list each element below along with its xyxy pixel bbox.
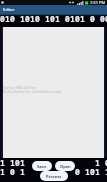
staticText: 1 xyxy=(70,13,75,24)
staticText: 1 xyxy=(95,157,100,168)
staticText: 0 xyxy=(105,13,107,24)
staticText: 1 xyxy=(85,166,90,177)
staticText: 0 xyxy=(65,13,70,24)
staticText: 1 xyxy=(55,13,60,24)
staticText: 1 xyxy=(105,166,107,177)
staticText: 0 xyxy=(75,13,80,24)
staticText: 0 xyxy=(0,13,5,24)
staticText: 1 xyxy=(20,166,25,177)
staticText: Type Your HTML Code Here xyxy=(3,86,37,90)
staticText: Open xyxy=(60,164,71,169)
staticText: 1 xyxy=(0,157,5,168)
staticText: 0 xyxy=(10,13,15,24)
staticText: 1 xyxy=(45,13,50,24)
staticText: 0 xyxy=(105,157,107,168)
staticText: 1 xyxy=(30,13,35,24)
staticText: Editor xyxy=(3,7,15,12)
staticText: 1 xyxy=(0,166,5,177)
staticText: 0 xyxy=(50,13,55,24)
staticText: 1 xyxy=(95,166,100,177)
staticText: 1 xyxy=(10,157,15,168)
staticText: 0 xyxy=(100,13,105,24)
button[interactable]: Save xyxy=(32,161,52,171)
staticText: 1 xyxy=(20,157,25,168)
button[interactable]: Open xyxy=(55,161,75,171)
button[interactable]: Process xyxy=(40,171,68,181)
staticText: 0 xyxy=(75,166,80,177)
staticText: 0 xyxy=(90,13,95,24)
staticText: Process xyxy=(46,174,62,179)
staticText: 0 xyxy=(25,13,30,24)
staticText: 1 xyxy=(80,13,85,24)
staticText: You Can Also Save Your Code And Retrieve… xyxy=(3,90,62,94)
staticText: 0 xyxy=(90,166,95,177)
staticText: 1 xyxy=(20,13,25,24)
staticText: 0 xyxy=(10,166,15,177)
staticText: 0 xyxy=(35,13,40,24)
staticText: Save xyxy=(37,164,47,169)
staticText: 7:31 PM xyxy=(90,0,106,5)
staticText: 1 xyxy=(5,13,10,24)
staticText: 0 xyxy=(15,157,20,168)
